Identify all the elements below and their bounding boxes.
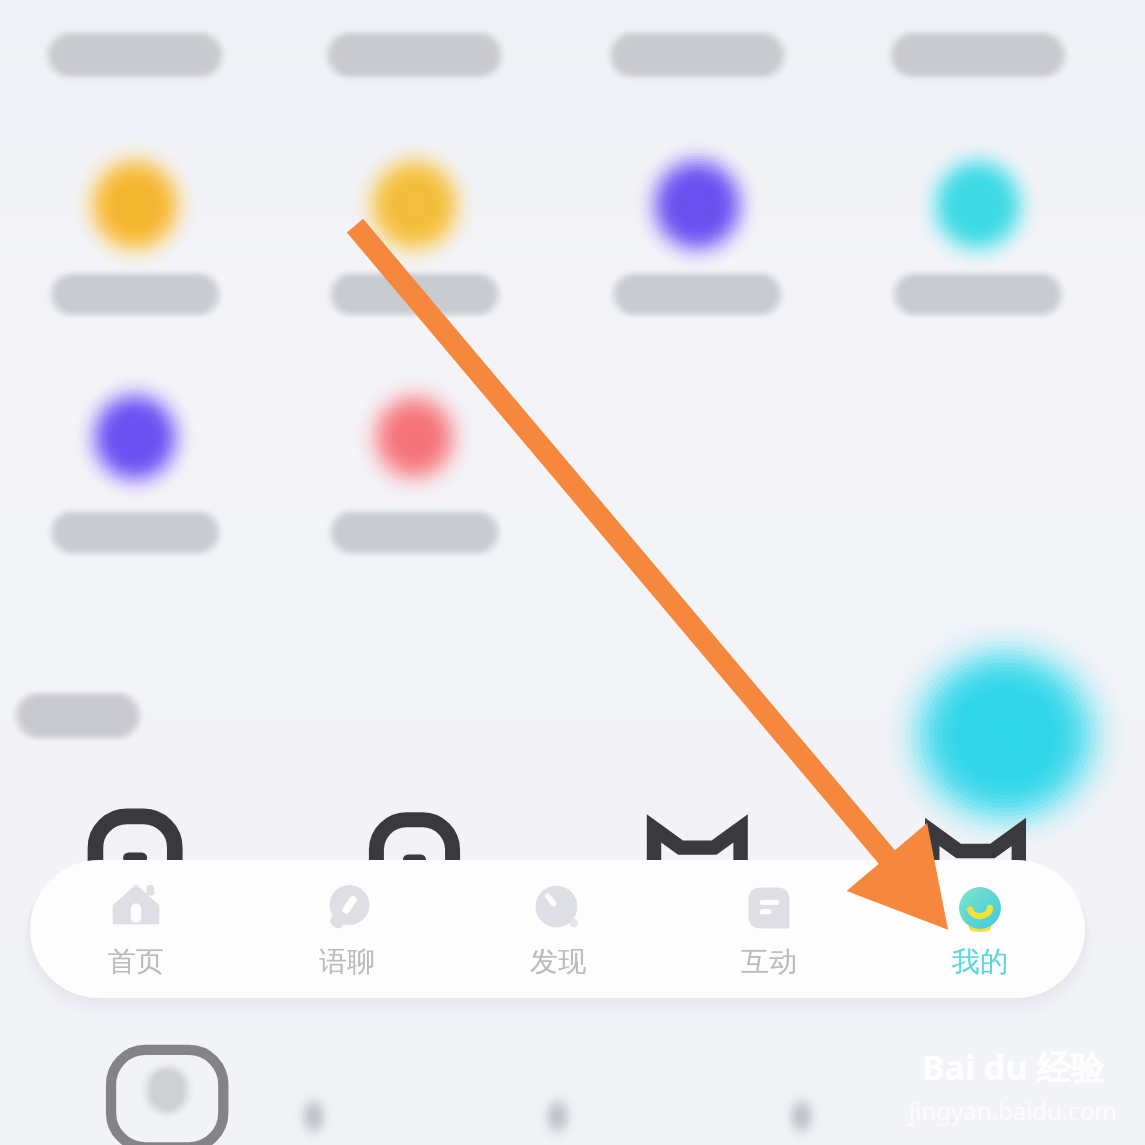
button[interactable]: 互动 <box>663 873 874 985</box>
staticText: 我的 <box>952 944 1008 979</box>
button[interactable]: 首页 <box>30 873 241 985</box>
button[interactable]: 发现 <box>452 873 663 985</box>
staticText: 发现 <box>530 944 586 979</box>
staticText: Bai du 经验 <box>922 1044 1105 1090</box>
staticText: 首页 <box>108 944 164 979</box>
staticText: 语聊 <box>319 944 375 979</box>
button[interactable]: 语聊 <box>241 873 452 985</box>
button[interactable]: 我的 <box>874 873 1085 985</box>
staticText: 互动 <box>741 944 797 979</box>
